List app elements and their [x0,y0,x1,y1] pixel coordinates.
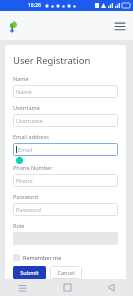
staticText: Cancel [57,269,75,276]
staticText: Submit [20,269,39,276]
staticText: User Registration [13,54,91,67]
button[interactable]: Recent apps [0,279,45,296]
button[interactable]: Home [45,279,89,296]
staticText: Email address [13,133,49,140]
button[interactable]: Remember me [13,253,62,262]
staticText: 16:26 [28,2,41,9]
staticText: Username [16,117,43,124]
button[interactable]: Cancel [50,266,82,279]
button[interactable]: Email [13,143,118,156]
button[interactable]: Back [89,279,133,296]
button[interactable]: Name [13,85,118,98]
staticText: Name [13,75,29,82]
button[interactable]: Password [13,203,118,216]
button[interactable]: Submit [13,266,46,279]
staticText: Password [16,206,41,213]
staticText: Name [16,88,32,95]
button[interactable]: App logo [5,18,21,34]
staticText: Password [13,193,38,200]
button[interactable]: Phone [13,174,118,187]
staticText: Remember me [23,254,62,261]
staticText: Phone Number [13,164,53,171]
staticText: Email [18,146,33,153]
staticText: Username [13,104,40,111]
button[interactable]: Menu [112,18,128,34]
staticText: Phone [16,177,33,184]
staticText: Role [13,222,25,229]
button[interactable]: Username [13,114,118,127]
